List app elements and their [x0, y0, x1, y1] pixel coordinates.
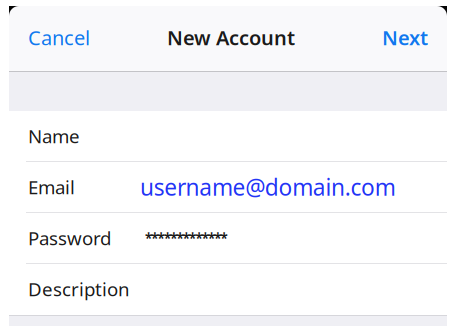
button[interactable]: Cancel	[18, 12, 100, 63]
staticText: Password	[28, 226, 111, 250]
staticText: Email	[28, 175, 75, 199]
staticText: Cancel	[28, 24, 90, 51]
staticText: New Account	[167, 24, 295, 51]
staticText: Next	[382, 24, 428, 51]
button[interactable]: Name	[9, 111, 447, 161]
staticText: Description	[28, 277, 130, 301]
staticText: username@domain.com	[140, 172, 396, 202]
button[interactable]: Description	[9, 264, 447, 314]
button[interactable]: Password	[9, 213, 447, 263]
staticText: Name	[28, 124, 80, 148]
staticText: *************	[145, 229, 228, 247]
button[interactable]: Email	[9, 162, 447, 212]
button[interactable]: Next	[372, 12, 438, 63]
